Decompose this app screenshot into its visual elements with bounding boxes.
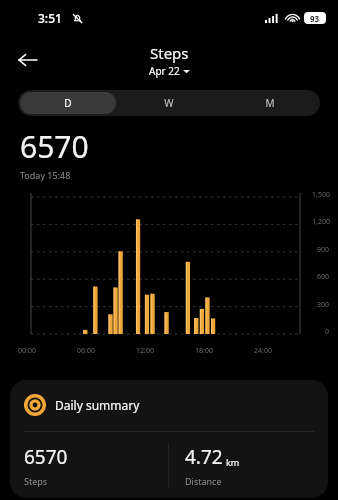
button[interactable]: Apr 22	[149, 64, 190, 78]
staticText: 18:00	[195, 346, 213, 356]
staticText: 0	[325, 327, 330, 337]
button[interactable]: W	[120, 92, 217, 114]
staticText: km	[226, 456, 240, 468]
button[interactable]: Back	[10, 42, 46, 78]
button[interactable]: Daily summary	[10, 380, 328, 498]
staticText: Steps	[150, 43, 189, 63]
staticText: 6570	[20, 126, 89, 167]
staticText: 4.72	[185, 444, 223, 470]
staticText: 600	[317, 272, 330, 282]
staticText: 1,200	[312, 217, 330, 227]
staticText: 00:00	[18, 346, 36, 356]
staticText: W	[164, 96, 174, 110]
staticText: 900	[317, 245, 330, 255]
staticText: D	[64, 96, 72, 110]
staticText: 1,500	[312, 190, 330, 200]
button[interactable]: D	[20, 92, 116, 114]
staticText: 6570	[24, 444, 68, 470]
staticText: Steps	[24, 475, 48, 487]
staticText: Distance	[185, 475, 222, 487]
staticText: 93	[310, 13, 320, 24]
staticText: 06:00	[77, 346, 95, 356]
staticText: 24:00	[254, 346, 272, 356]
staticText: Daily summary	[55, 397, 140, 413]
staticText: 12:00	[136, 346, 154, 356]
staticText: Apr 22	[149, 64, 180, 78]
staticText: M	[265, 96, 275, 110]
button[interactable]: M	[221, 92, 318, 114]
staticText: Today 15:48	[20, 169, 71, 181]
staticText: 3:51	[38, 10, 62, 26]
staticText: 300	[317, 300, 330, 310]
